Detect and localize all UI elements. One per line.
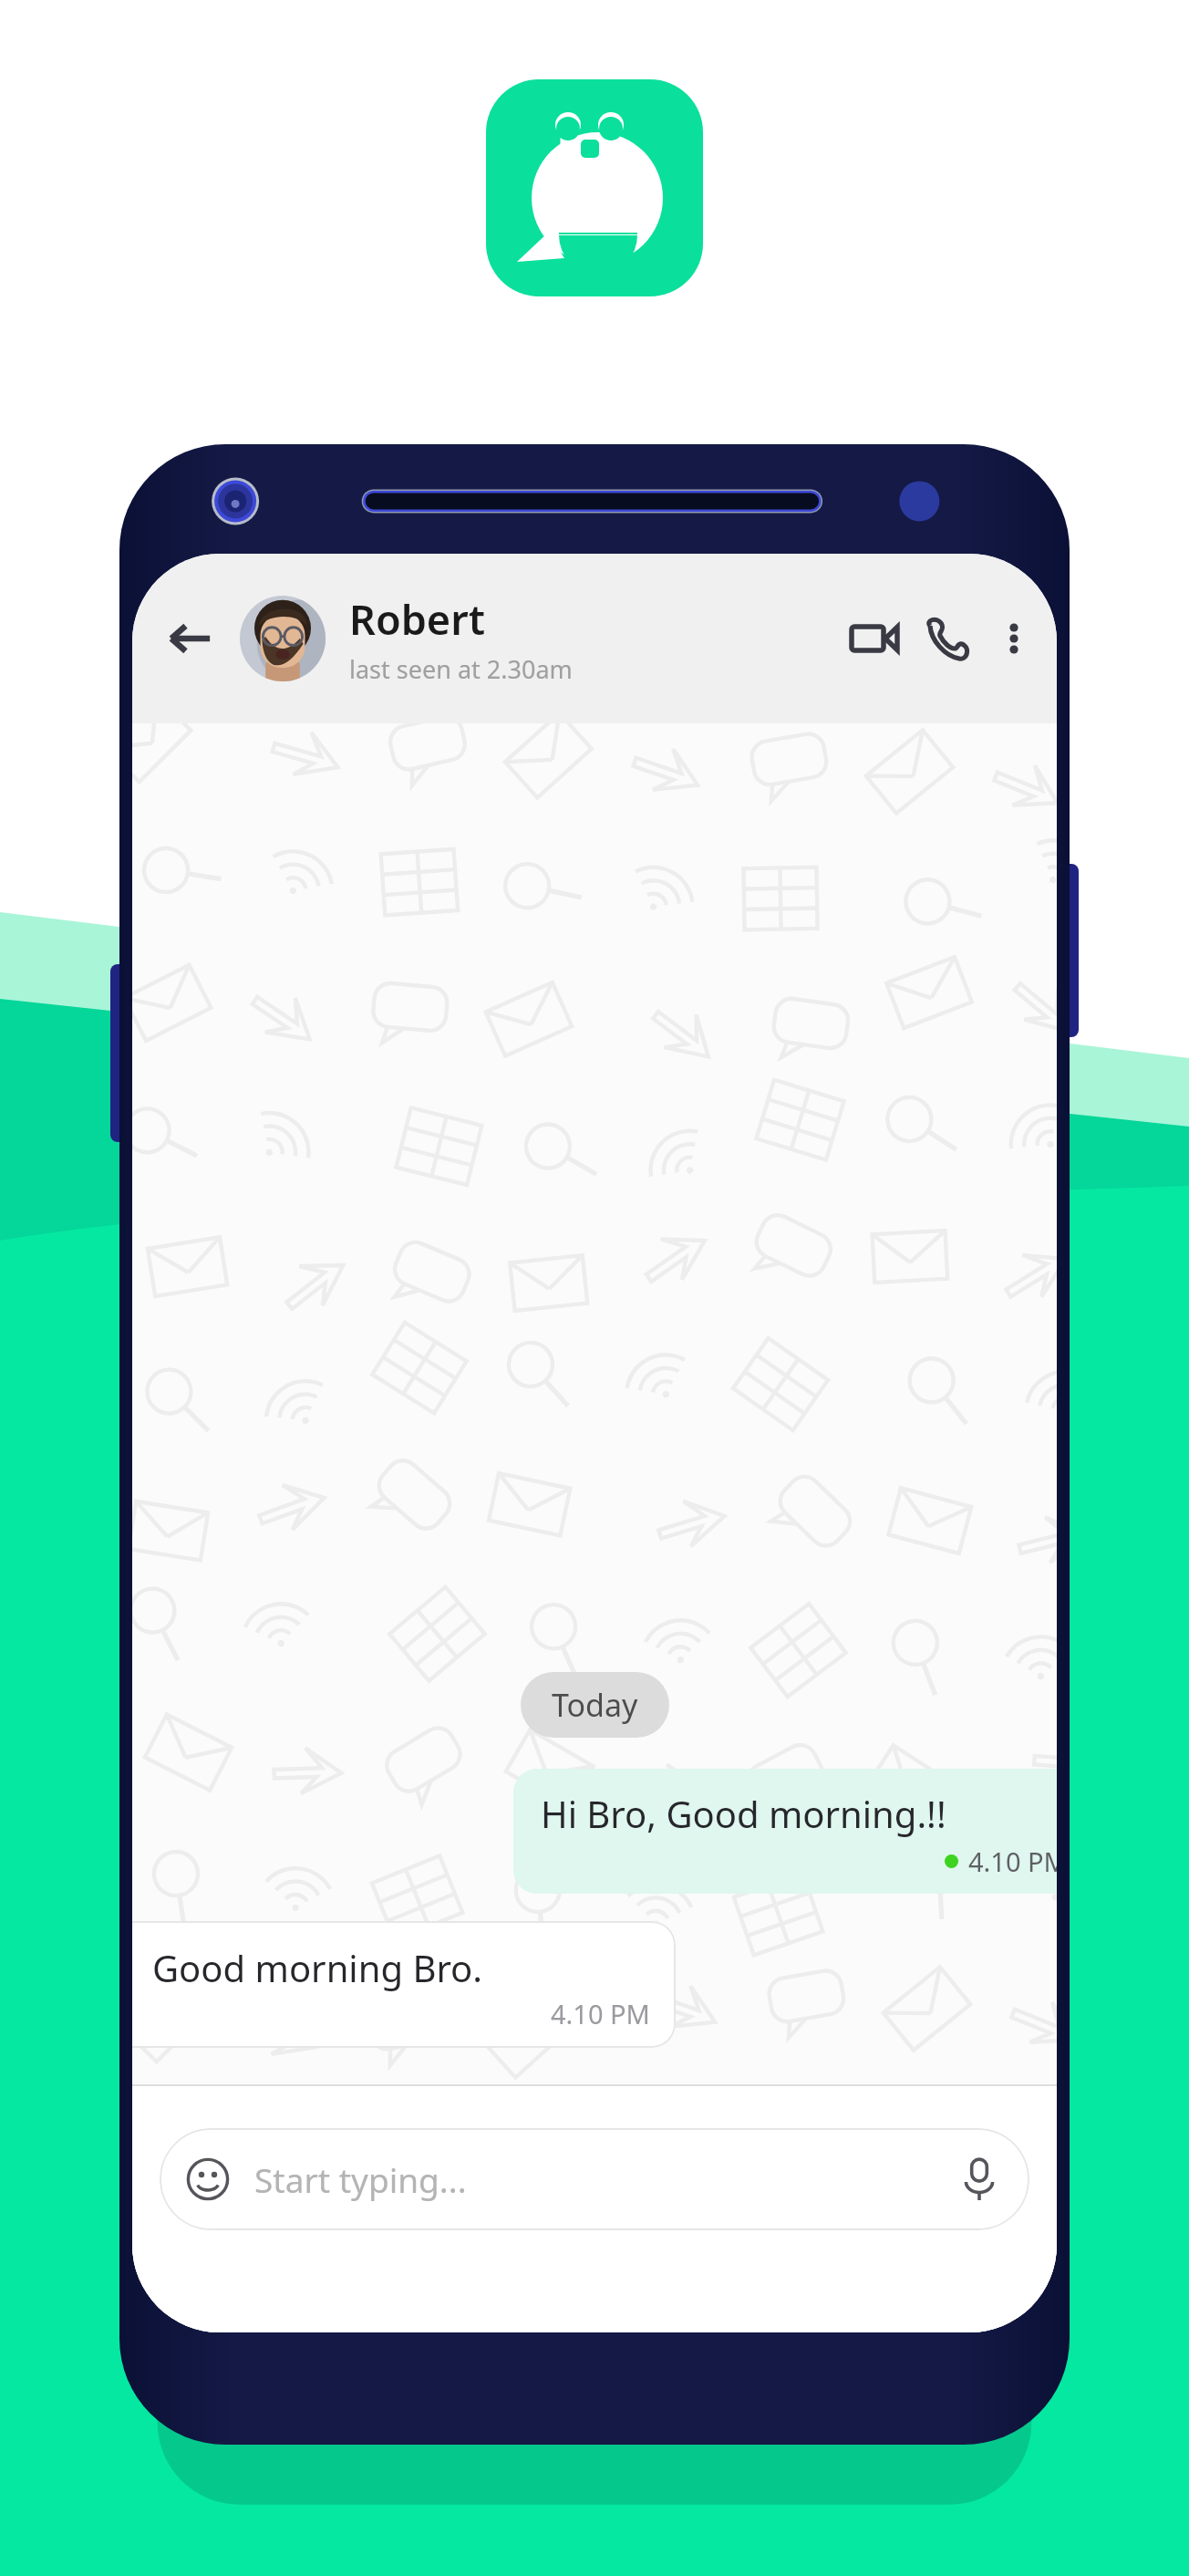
staticText: Robert [349, 591, 485, 647]
button[interactable]: Emoji [160, 2128, 1029, 2230]
button[interactable]: More options [984, 608, 1044, 669]
button[interactable]: Robert profile photo [240, 596, 326, 681]
button[interactable]: Video call [838, 602, 911, 675]
button[interactable]: Hi Bro, Good morning.!! [513, 1769, 1057, 1894]
staticText: 4.10 PM [968, 1844, 1057, 1879]
button[interactable]: Good morning Bro. [132, 1921, 676, 2048]
staticText: Today [552, 1684, 638, 1726]
button[interactable]: Voice call [911, 602, 984, 675]
button[interactable]: Back [156, 604, 225, 673]
staticText: Start typing... [254, 2156, 467, 2202]
staticText: last seen at 2.30am [349, 652, 573, 686]
button[interactable]: App icon [486, 79, 703, 296]
button[interactable]: Today [521, 1672, 669, 1738]
button[interactable]: Voice message [947, 2147, 1011, 2211]
staticText: Hi Bro, Good morning.!! [541, 1789, 946, 1838]
button[interactable]: Emoji [178, 2149, 238, 2209]
staticText: Good morning Bro. [152, 1943, 483, 1992]
staticText: 4.10 PM [551, 1996, 650, 2031]
